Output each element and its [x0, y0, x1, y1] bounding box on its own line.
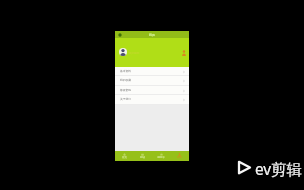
staticText: 我的收藏: [120, 78, 131, 81]
staticText: 基本资料: [120, 69, 131, 72]
button[interactable]: 用户昵称: [119, 48, 140, 56]
staticText: 我的: [177, 156, 182, 159]
staticText: 修改密码: [120, 88, 131, 91]
button[interactable]: 商城: [133, 151, 151, 161]
button[interactable]: 我的: [170, 151, 189, 161]
staticText: 用户昵称: [129, 51, 140, 54]
staticText: ev剪辑: [255, 159, 302, 180]
button[interactable]: 首页: [115, 151, 133, 161]
button[interactable]: Back: [118, 33, 122, 37]
button[interactable]: 购物车: [151, 151, 170, 161]
button[interactable]: Account settings: [182, 50, 186, 56]
button[interactable]: 关于我们: [115, 95, 189, 104]
button[interactable]: 我的收藏: [115, 76, 189, 85]
staticText: 购物车: [157, 156, 165, 159]
staticText: 关于我们: [120, 97, 131, 100]
staticText: 首页: [122, 156, 127, 159]
button[interactable]: 修改密码: [115, 86, 189, 95]
staticText: 商城: [140, 156, 145, 159]
staticText: 我的: [149, 33, 155, 37]
button[interactable]: 基本资料: [115, 67, 189, 76]
